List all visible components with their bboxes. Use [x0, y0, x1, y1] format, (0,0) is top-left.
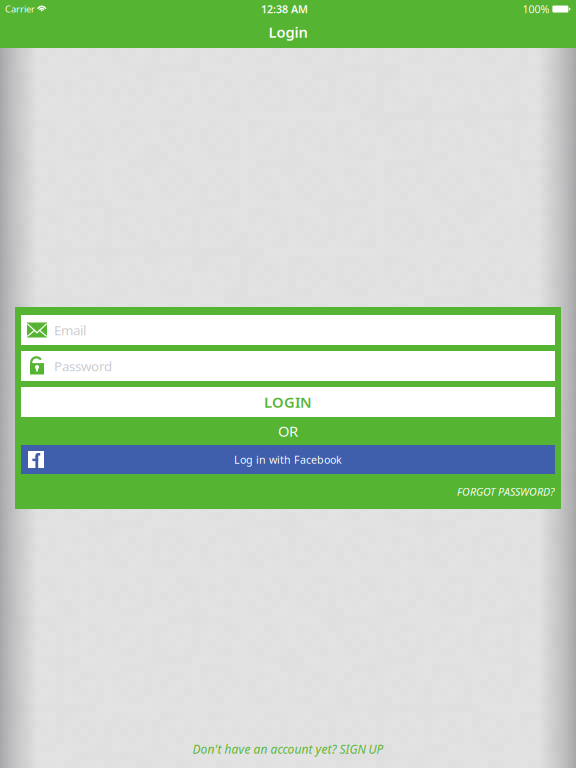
staticText: 12:38 AM — [261, 2, 308, 16]
staticText: Password — [54, 357, 112, 375]
staticText: OR — [278, 421, 298, 441]
staticText: Log in with Facebook — [234, 452, 342, 467]
staticText: FORGOT PASSWORD? — [457, 484, 555, 499]
staticText: Email — [54, 321, 86, 339]
button[interactable]: Password — [21, 351, 555, 381]
staticText: Login — [268, 22, 307, 42]
button[interactable]: FORGOT PASSWORD? — [21, 474, 555, 509]
button[interactable]: Email — [21, 315, 555, 345]
button[interactable]: Don't have an account yet? SIGN UP — [192, 741, 383, 757]
button[interactable]: LOGIN — [21, 387, 555, 417]
staticText: Don't have an account yet? SIGN UP — [192, 741, 383, 757]
staticText: 100% — [522, 2, 549, 16]
staticText: LOGIN — [264, 392, 312, 412]
button[interactable]: Log in with Facebook — [21, 445, 555, 474]
staticText: Carrier — [5, 3, 35, 15]
